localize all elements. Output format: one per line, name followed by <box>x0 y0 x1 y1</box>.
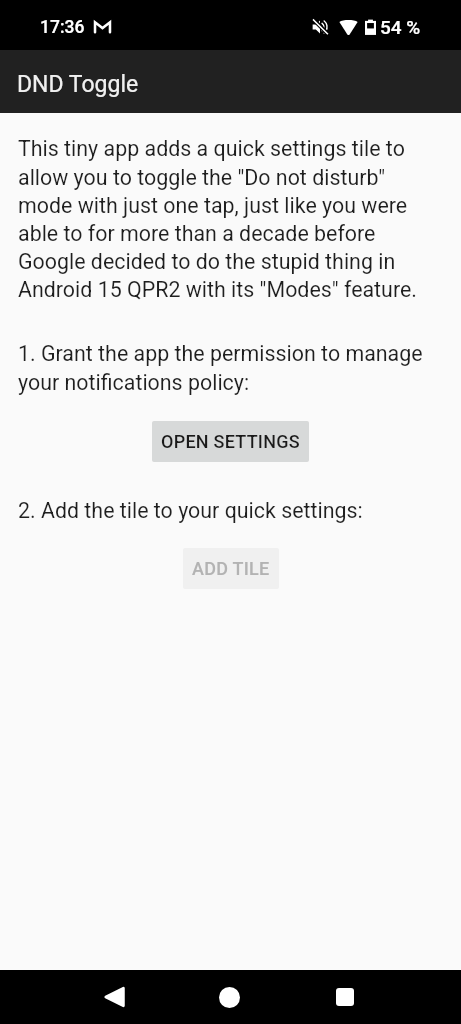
staticText: 54 % <box>380 16 421 38</box>
staticText: DND Toggle <box>17 71 139 98</box>
button[interactable]: Back <box>57 970 172 1024</box>
staticText: 17:36 <box>40 17 85 38</box>
button[interactable]: Home <box>172 970 287 1024</box>
staticText: This tiny app adds a quick settings tile… <box>18 136 438 302</box>
staticText: 2. Add the tile to your quick settings: <box>18 498 363 523</box>
button[interactable]: ADD TILE <box>183 548 279 589</box>
button[interactable]: OPEN SETTINGS <box>152 421 309 462</box>
button[interactable]: Recent apps <box>287 970 402 1024</box>
staticText: OPEN SETTINGS <box>161 431 300 452</box>
staticText: 1. Grant the app the permission to manag… <box>18 341 438 395</box>
staticText: ADD TILE <box>192 558 270 579</box>
